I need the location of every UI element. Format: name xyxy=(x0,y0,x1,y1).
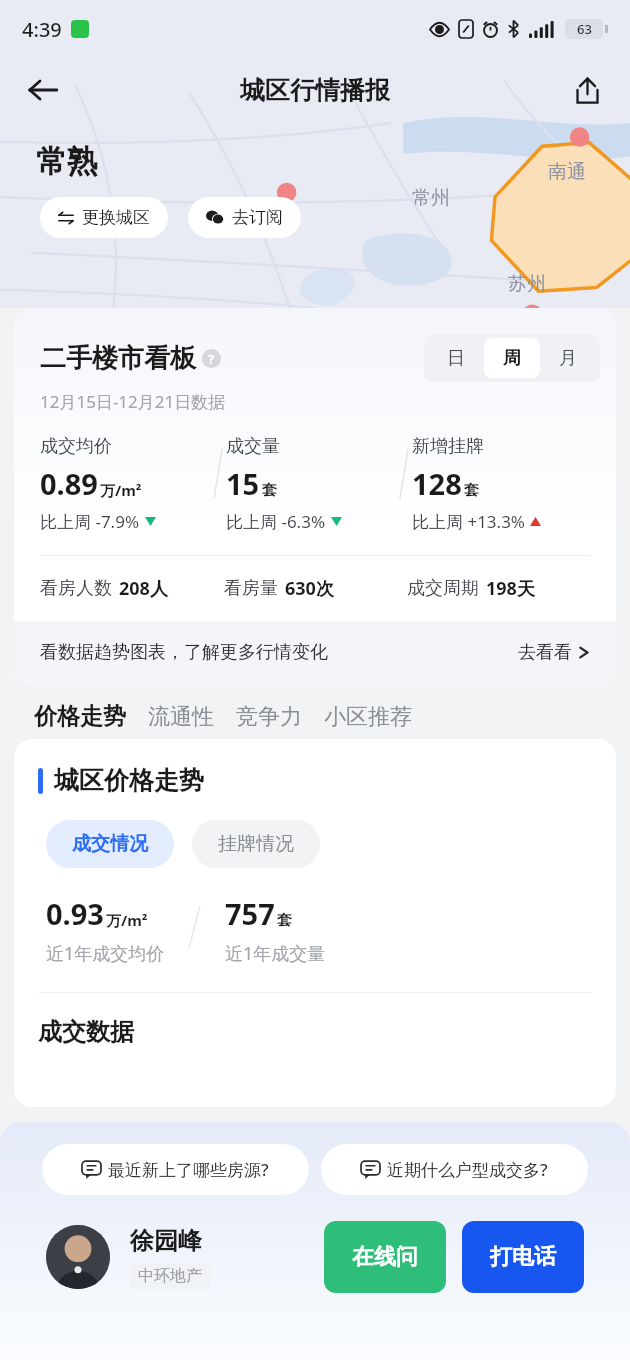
button[interactable]: 近期什么户型成交多? xyxy=(321,1144,588,1195)
button[interactable]: Share xyxy=(560,63,614,117)
staticText: 0.93 xyxy=(46,894,104,933)
staticText: 比上周 +13.3% xyxy=(412,510,525,533)
staticText: 4:39 xyxy=(22,16,62,43)
staticText: 最近新上了哪些房源? xyxy=(108,1158,269,1181)
staticText: 城区行情播报 xyxy=(240,75,390,106)
button[interactable]: 成交情况 xyxy=(46,820,174,868)
button[interactable]: Agent avatar xyxy=(46,1225,110,1289)
button[interactable]: Help xyxy=(202,349,221,368)
staticText: 近1年成交量 xyxy=(225,941,326,966)
staticText: 城区价格走势 xyxy=(54,765,204,796)
button[interactable]: 在线问 xyxy=(324,1221,446,1293)
staticText: 128 xyxy=(412,464,462,503)
button[interactable]: 竞争力 xyxy=(236,703,324,731)
staticText: 苏州 xyxy=(508,272,546,296)
button[interactable]: 更换城区 xyxy=(40,197,168,238)
staticText: 套 xyxy=(277,911,292,930)
button[interactable]: 小区推荐 xyxy=(324,703,434,731)
staticText: 成交情况 xyxy=(72,832,148,856)
staticText: 竞争力 xyxy=(236,703,302,731)
staticText: 新增挂牌 xyxy=(412,435,484,458)
staticText: 成交量 xyxy=(226,435,280,458)
staticText: 常州 xyxy=(412,186,450,210)
button[interactable]: 月 xyxy=(540,338,596,378)
staticText: 日 xyxy=(447,347,465,370)
staticText: 小区推荐 xyxy=(324,703,412,731)
staticText: 流通性 xyxy=(148,703,214,731)
button[interactable]: 看数据趋势图表，了解更多行情变化 xyxy=(14,621,616,684)
button[interactable]: 最近新上了哪些房源? xyxy=(42,1144,309,1195)
staticText: 630次 xyxy=(285,576,334,601)
button[interactable]: 挂牌情况 xyxy=(192,820,320,868)
button[interactable]: 日 xyxy=(428,338,484,378)
button[interactable]: 打电话 xyxy=(462,1221,584,1293)
button[interactable]: 去订阅 xyxy=(188,197,301,238)
staticText: 套 xyxy=(464,481,479,500)
staticText: 比上周 -7.9% xyxy=(40,510,140,533)
staticText: 更换城区 xyxy=(82,207,150,228)
staticText: 成交均价 xyxy=(40,435,112,458)
staticText: 757 xyxy=(225,894,275,933)
staticText: 近1年成交均价 xyxy=(46,941,165,966)
staticText: 看数据趋势图表，了解更多行情变化 xyxy=(40,641,328,664)
staticText: 198天 xyxy=(486,576,535,601)
staticText: 近期什么户型成交多? xyxy=(387,1158,548,1181)
staticText: 价格走势 xyxy=(34,702,126,731)
staticText: 去订阅 xyxy=(232,207,283,228)
staticText: 中环地产 xyxy=(138,1266,202,1286)
staticText: 万/m² xyxy=(100,480,142,500)
staticText: 63 xyxy=(577,20,592,38)
staticText: 12月15日-12月21日数据 xyxy=(40,390,226,413)
staticText: 南通 xyxy=(548,160,586,184)
staticText: 万/m² xyxy=(106,910,148,930)
staticText: 在线问 xyxy=(352,1243,418,1271)
staticText: 月 xyxy=(559,347,577,370)
staticText: 208人 xyxy=(119,576,168,601)
staticText: 看房人数 xyxy=(40,577,112,600)
staticText: 0.89 xyxy=(40,464,98,503)
staticText: 套 xyxy=(262,481,277,500)
staticText: 成交数据 xyxy=(38,1017,134,1047)
staticText: 15 xyxy=(226,464,260,503)
staticText: 常熟 xyxy=(36,142,98,181)
staticText: 比上周 -6.3% xyxy=(226,510,326,533)
button[interactable]: 周 xyxy=(484,338,540,378)
staticText: 二手楼市看板 xyxy=(40,342,196,375)
staticText: 成交周期 xyxy=(407,577,479,600)
staticText: 打电话 xyxy=(490,1243,556,1271)
staticText: 看房量 xyxy=(224,577,278,600)
staticText: 徐园峰 xyxy=(130,1226,202,1256)
button[interactable]: 价格走势 xyxy=(34,702,148,731)
staticText: 挂牌情况 xyxy=(218,832,294,856)
staticText: ? xyxy=(208,350,215,368)
staticText: 周 xyxy=(503,347,521,370)
button[interactable]: 流通性 xyxy=(148,703,236,731)
staticText: 去看看 xyxy=(518,641,572,664)
button[interactable]: Back xyxy=(16,63,70,117)
